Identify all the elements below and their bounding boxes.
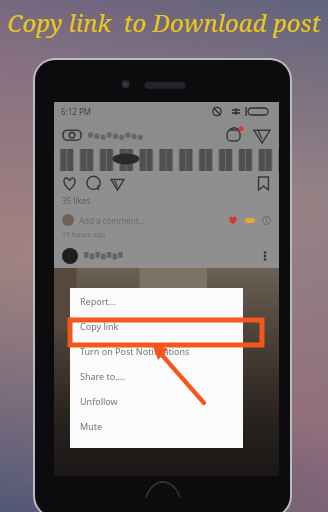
- button[interactable]: Comment: [86, 176, 101, 191]
- button[interactable]: Camera: [62, 125, 82, 145]
- staticText: Turn on Post Notifications: [80, 345, 190, 357]
- button[interactable]: Like: [62, 176, 77, 191]
- button[interactable]: Direct messages: [253, 126, 271, 144]
- staticText: Add a comment...: [79, 215, 146, 226]
- button[interactable]: More options: [259, 248, 271, 264]
- staticText: 35 likes: [62, 195, 90, 206]
- button[interactable]: Mute: [70, 413, 243, 438]
- staticText: Share to....: [80, 370, 125, 382]
- button[interactable]: Report…: [70, 288, 243, 313]
- staticText: Copy link: [80, 320, 119, 332]
- staticText: Copy link to Download post: [0, 6, 328, 39]
- staticText: Report…: [80, 295, 116, 307]
- button[interactable]: Share: [110, 176, 125, 191]
- button[interactable]: Save: [256, 176, 271, 191]
- button[interactable]: Copy link: [70, 313, 243, 338]
- button[interactable]: [70, 320, 262, 345]
- button[interactable]: Unfollow: [70, 388, 243, 413]
- staticText: Mute: [80, 420, 103, 432]
- staticText: 19 hours ago: [62, 230, 106, 240]
- button[interactable]: IGTV: [225, 126, 243, 144]
- staticText: 6:12 PM: [61, 106, 92, 117]
- staticText: Unfollow: [80, 395, 118, 407]
- button[interactable]: Share to....: [70, 363, 243, 388]
- button[interactable]: Turn on Post Notifications: [70, 338, 243, 363]
